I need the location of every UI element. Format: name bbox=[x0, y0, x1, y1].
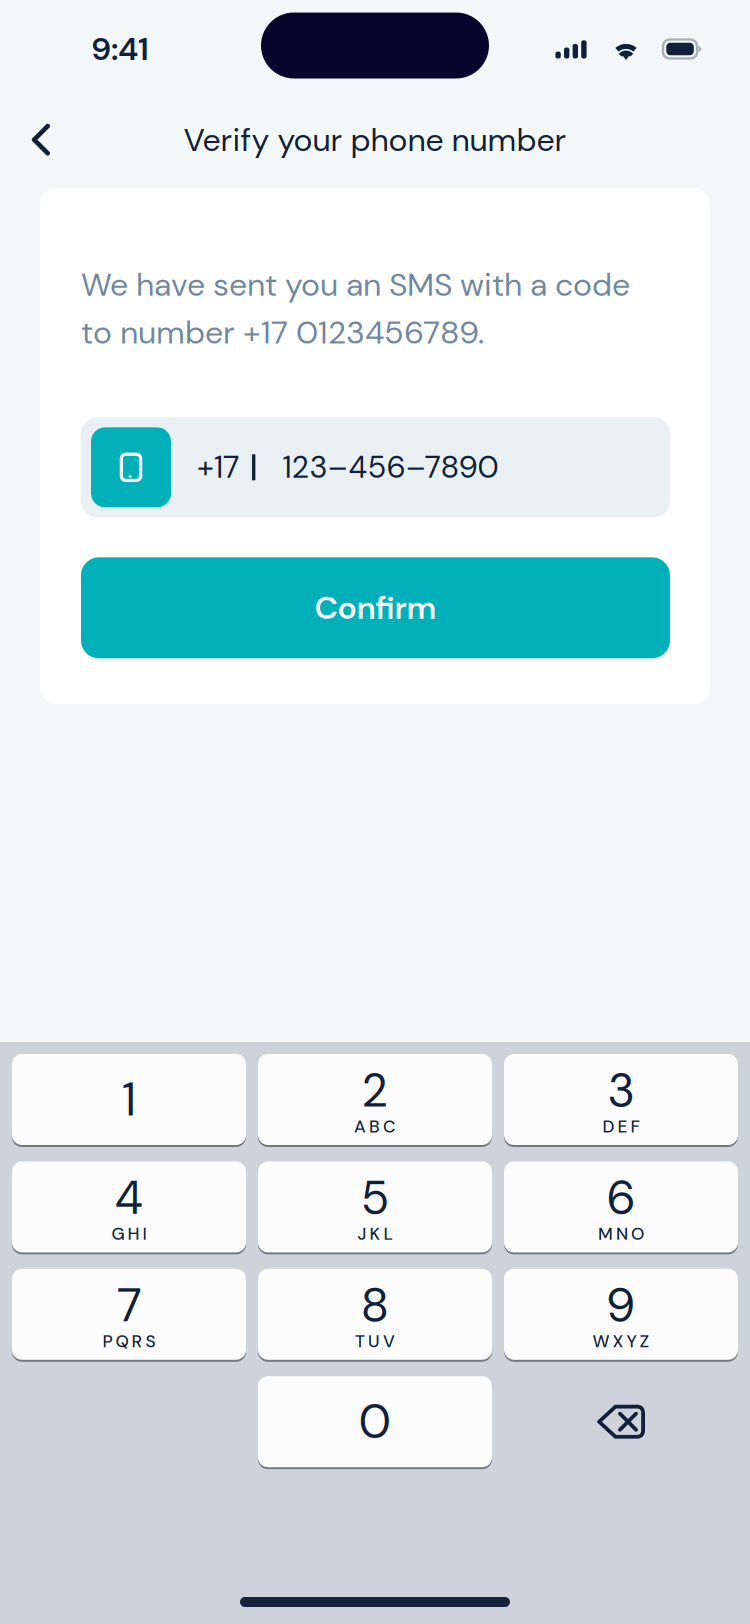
button[interactable]: Delete bbox=[504, 1376, 738, 1467]
staticText: Confirm bbox=[314, 587, 436, 629]
staticText: DEF bbox=[602, 1115, 639, 1138]
staticText: 1 bbox=[122, 1069, 135, 1130]
staticText: +17 bbox=[197, 447, 239, 487]
button[interactable]: 4 bbox=[12, 1161, 246, 1252]
staticText: MNO bbox=[598, 1223, 644, 1245]
staticText: 0 bbox=[359, 1391, 391, 1452]
staticText: JKL bbox=[357, 1223, 392, 1245]
button[interactable]: 7 bbox=[12, 1269, 246, 1360]
staticText: GHI bbox=[111, 1223, 146, 1245]
staticText: PQRS bbox=[102, 1330, 155, 1353]
staticText: 8 bbox=[361, 1275, 388, 1336]
staticText: 3 bbox=[608, 1060, 634, 1121]
button[interactable]: 6 bbox=[504, 1161, 738, 1252]
staticText: TUV bbox=[355, 1330, 395, 1353]
button[interactable]: 3 bbox=[504, 1054, 738, 1145]
staticText: 4 bbox=[115, 1167, 143, 1228]
button[interactable]: 8 bbox=[258, 1269, 492, 1360]
staticText: 2 bbox=[362, 1060, 387, 1121]
staticText: 7 bbox=[117, 1275, 141, 1336]
button[interactable]: 5 bbox=[258, 1161, 492, 1252]
button[interactable]: Confirm bbox=[81, 557, 670, 658]
staticText: 9:41 bbox=[91, 28, 149, 70]
staticText: WXYZ bbox=[592, 1330, 649, 1353]
staticText: 5 bbox=[362, 1167, 388, 1228]
staticText: to number +17 0123456789. bbox=[81, 312, 484, 353]
button[interactable]: 9 bbox=[504, 1269, 738, 1360]
staticText: 9 bbox=[607, 1275, 635, 1336]
staticText: We have sent you an SMS with a code bbox=[81, 264, 630, 306]
button[interactable]: 0 bbox=[258, 1376, 492, 1467]
staticText: 123–456–7890 bbox=[282, 447, 498, 487]
button[interactable]: 2 bbox=[258, 1054, 492, 1145]
staticText: 6 bbox=[607, 1167, 635, 1228]
staticText: Verify your phone number bbox=[183, 119, 566, 161]
staticText: ABC bbox=[354, 1115, 396, 1138]
button[interactable]: Back bbox=[10, 109, 72, 171]
button[interactable]: 1 bbox=[12, 1054, 246, 1145]
